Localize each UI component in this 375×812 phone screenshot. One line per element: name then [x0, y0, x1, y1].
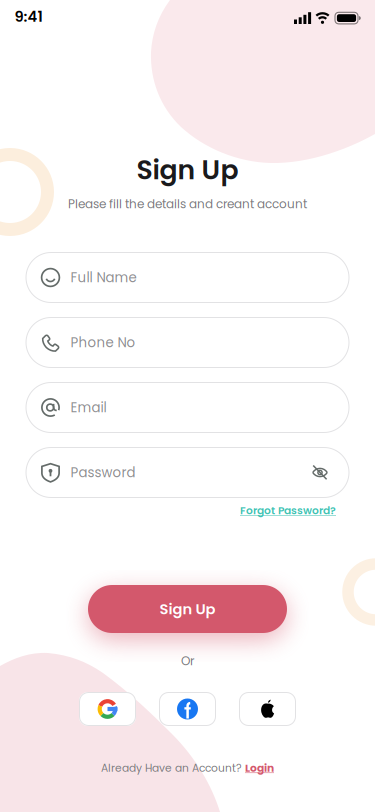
button[interactable]: Forgot Password? — [240, 503, 336, 518]
button[interactable]: Sign up with Apple — [239, 692, 296, 726]
staticText: Email — [70, 398, 106, 417]
staticText: Forgot Password? — [240, 503, 336, 518]
staticText: Password — [70, 463, 135, 482]
button[interactable]: Sign up with Facebook — [159, 692, 216, 726]
button[interactable]: Show password — [309, 462, 330, 483]
staticText: Please fill the details and creant accou… — [68, 196, 307, 212]
staticText: Login — [245, 761, 274, 775]
button[interactable]: Email — [25, 382, 349, 433]
button[interactable]: Sign up with Google — [79, 692, 136, 726]
button[interactable]: Sign Up — [88, 585, 287, 633]
button[interactable]: Password — [25, 447, 349, 498]
button[interactable]: Full Name — [25, 252, 349, 303]
button[interactable]: Phone No — [25, 317, 349, 368]
staticText: Sign Up — [159, 599, 215, 619]
button[interactable]: Login — [245, 761, 274, 775]
staticText: Full Name — [70, 268, 136, 287]
staticText: Already Have an Account? — [101, 761, 242, 775]
staticText: Phone No — [70, 333, 135, 352]
staticText: 9:41 — [14, 6, 42, 26]
staticText: Sign Up — [136, 152, 238, 188]
staticText: Or — [181, 653, 194, 669]
